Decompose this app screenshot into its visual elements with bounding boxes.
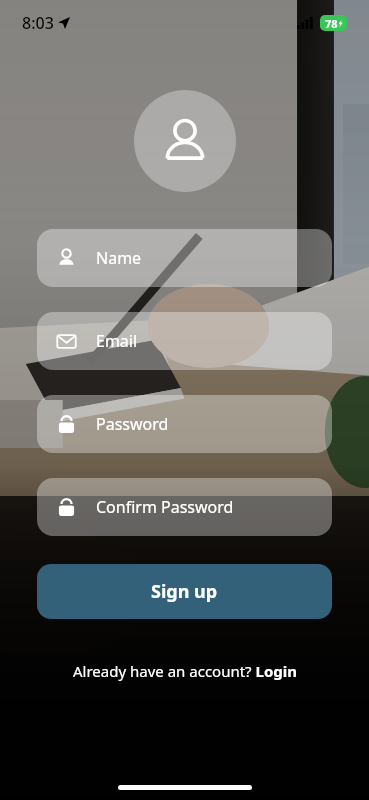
staticText: Confirm Password	[96, 496, 234, 518]
button[interactable]: Password	[37, 395, 332, 453]
button[interactable]: Name	[37, 229, 332, 287]
button[interactable]: Confirm Password	[37, 478, 332, 536]
staticText: Password	[96, 413, 169, 435]
staticText: Email	[96, 330, 138, 352]
staticText: 78	[325, 16, 338, 31]
button[interactable]: Email	[37, 312, 332, 370]
button[interactable]: Sign up	[37, 564, 332, 619]
staticText: 8:03	[22, 12, 54, 34]
staticText: Name	[96, 247, 142, 269]
button[interactable]: Already have an account? Login	[0, 661, 369, 681]
staticText: Already have an account? Login	[73, 661, 297, 681]
staticText: Sign up	[151, 579, 218, 604]
